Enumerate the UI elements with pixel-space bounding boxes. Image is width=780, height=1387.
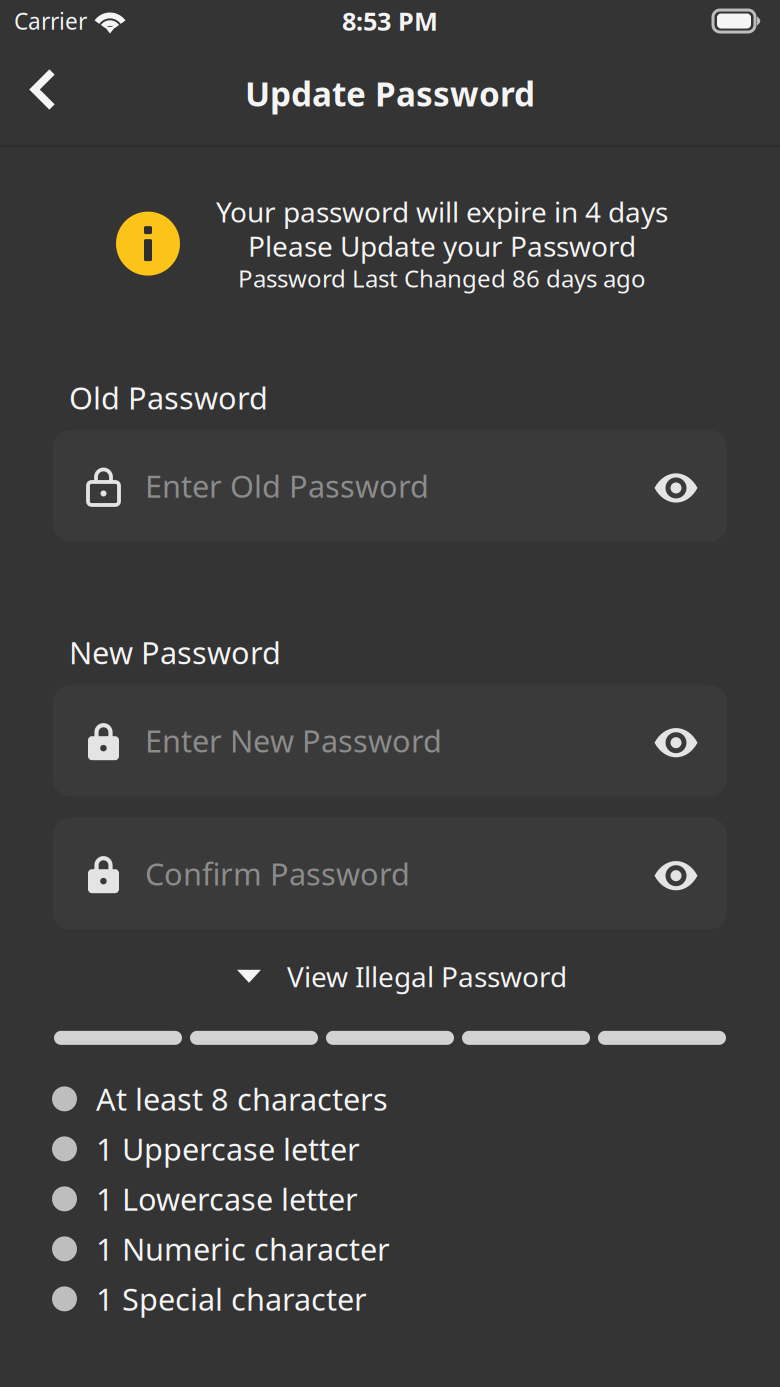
button[interactable]: Back (0, 60, 78, 127)
button[interactable]: Enter Old Password (87, 465, 640, 507)
staticText: Password Last Changed 86 days ago (238, 262, 646, 294)
button[interactable]: View Illegal Password (213, 948, 567, 1005)
staticText: New Password (69, 632, 281, 673)
staticText: Carrier (14, 6, 87, 36)
staticText: At least 8 characters (96, 1078, 388, 1119)
staticText: View Illegal Password (287, 958, 567, 995)
button[interactable]: Enter New Password (87, 720, 640, 762)
button[interactable]: Show Confirm Password (640, 845, 698, 903)
button[interactable]: Confirm Password (87, 853, 640, 895)
staticText: Enter New Password (145, 720, 442, 761)
staticText: Your password will expire in 4 days (216, 193, 668, 230)
staticText: 8:53 PM (342, 4, 438, 38)
button[interactable]: Show Enter Old Password (640, 457, 698, 515)
staticText: 1 Lowercase letter (96, 1178, 358, 1219)
staticText: 1 Uppercase letter (96, 1128, 360, 1169)
staticText: Update Password (245, 71, 535, 116)
staticText: Enter Old Password (145, 466, 429, 506)
staticText: Old Password (69, 377, 268, 418)
button[interactable]: Show Enter New Password (640, 712, 698, 770)
staticText: 1 Numeric character (96, 1228, 390, 1269)
staticText: Please Update your Password (248, 227, 636, 264)
staticText: Confirm Password (145, 853, 410, 894)
staticText: 1 Special character (96, 1278, 367, 1319)
